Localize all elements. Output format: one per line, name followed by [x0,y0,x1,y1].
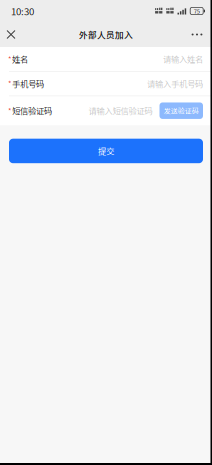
staticText: 75 [194,7,200,15]
staticText: 请输入短信验证码 [88,105,152,117]
staticText: * [8,54,11,64]
staticText: 10:30 [11,4,34,18]
staticText: 发送验证码 [164,106,199,116]
staticText: * [8,105,11,116]
button[interactable]: 发送验证码 [159,102,203,119]
staticText: 请输入手机号码 [147,78,203,90]
staticText: 手机号码 [12,78,44,90]
staticText: 姓名 [12,53,28,65]
staticText: 请输入姓名 [163,53,203,65]
button[interactable]: Close [0,22,22,47]
button[interactable]: More options [186,22,208,47]
staticText: 短信验证码 [12,105,52,117]
staticText: 外部人员加入 [79,28,133,41]
button[interactable]: 提交 [9,139,203,163]
staticText: * [8,78,11,89]
staticText: 提交 [98,145,114,157]
